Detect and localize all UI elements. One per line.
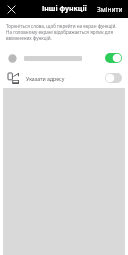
button[interactable]: Указати адресу xyxy=(0,68,128,88)
staticText: Торкніться слова, щоб перейти на екран ф… xyxy=(6,23,120,41)
button[interactable]: Увімкнено xyxy=(0,48,128,68)
staticText: Указати адресу xyxy=(26,75,65,82)
button[interactable]: Вимкнено xyxy=(105,73,122,83)
button[interactable]: Змінити xyxy=(92,0,128,18)
staticText: Змінити xyxy=(97,5,123,14)
staticText: Інші функції xyxy=(42,4,87,14)
button[interactable]: Закрити xyxy=(3,1,19,17)
button[interactable]: Увімкнено xyxy=(105,53,122,63)
